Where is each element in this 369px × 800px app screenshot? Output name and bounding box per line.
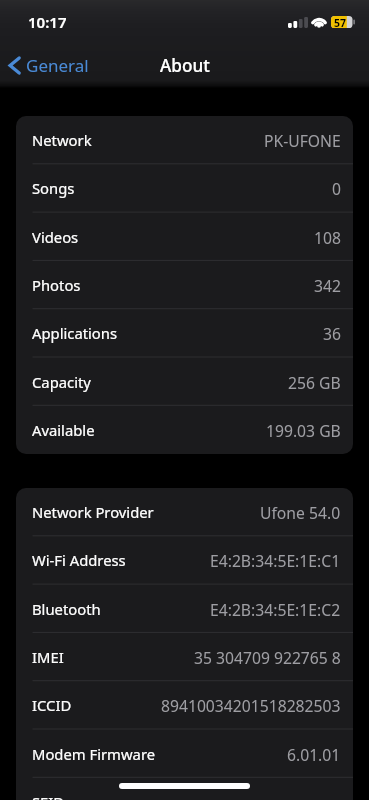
staticText: 108 bbox=[314, 227, 341, 248]
staticText: 199.03 GB bbox=[266, 420, 341, 441]
staticText: 342 bbox=[314, 275, 341, 296]
staticText: Songs bbox=[32, 178, 75, 198]
button[interactable]: Network bbox=[16, 116, 353, 164]
staticText: 35 304709 922765 8 bbox=[194, 647, 341, 668]
staticText: 57 bbox=[334, 16, 347, 28]
staticText: Modem Firmware bbox=[32, 744, 156, 764]
staticText: Network bbox=[32, 130, 92, 150]
staticText: E4:2B:34:5E:1E:C2 bbox=[210, 599, 341, 620]
staticText: Capacity bbox=[32, 372, 91, 392]
staticText: General bbox=[26, 54, 89, 77]
staticText: Applications bbox=[32, 323, 118, 343]
staticText: 36 bbox=[323, 323, 341, 344]
button[interactable]: Videos bbox=[16, 213, 353, 261]
staticText: 10:17 bbox=[28, 12, 67, 32]
staticText: Photos bbox=[32, 275, 81, 295]
staticText: 0 bbox=[332, 178, 341, 199]
staticText: 6.01.01 bbox=[287, 744, 341, 765]
staticText: Videos bbox=[32, 227, 79, 247]
button[interactable]: General bbox=[0, 49, 97, 84]
staticText: IMEI bbox=[32, 647, 64, 667]
other: Battery 57 percent bbox=[331, 16, 356, 28]
button[interactable]: Network Provider bbox=[16, 488, 353, 536]
staticText: SEID bbox=[32, 792, 65, 800]
button[interactable]: Songs bbox=[16, 164, 353, 212]
button[interactable]: Modem Firmware bbox=[16, 730, 353, 778]
staticText: Ufone 54.0 bbox=[260, 502, 341, 523]
button[interactable]: ICCID bbox=[16, 681, 353, 729]
button[interactable]: SEID bbox=[16, 778, 353, 800]
button[interactable]: Capacity bbox=[16, 358, 353, 406]
other: Cellular signal bbox=[288, 17, 308, 28]
button[interactable]: Wi-Fi Address bbox=[16, 536, 353, 584]
staticText: E4:2B:34:5E:1E:C1 bbox=[210, 550, 341, 571]
staticText: 256 GB bbox=[288, 372, 341, 393]
button[interactable]: IMEI bbox=[16, 633, 353, 681]
staticText: Bluetooth bbox=[32, 599, 101, 619]
staticText: 89410034201518282503 bbox=[161, 695, 341, 716]
staticText: ICCID bbox=[32, 695, 72, 715]
button[interactable]: Bluetooth bbox=[16, 585, 353, 633]
button[interactable]: Available bbox=[16, 406, 353, 454]
button[interactable]: Photos bbox=[16, 261, 353, 309]
staticText: Available bbox=[32, 420, 95, 440]
staticText: About bbox=[160, 54, 210, 77]
staticText: PK-UFONE bbox=[264, 130, 341, 151]
staticText: Wi-Fi Address bbox=[32, 550, 126, 570]
other: Wi-Fi bbox=[311, 16, 327, 28]
staticText: Network Provider bbox=[32, 502, 154, 522]
button[interactable]: Applications bbox=[16, 309, 353, 357]
